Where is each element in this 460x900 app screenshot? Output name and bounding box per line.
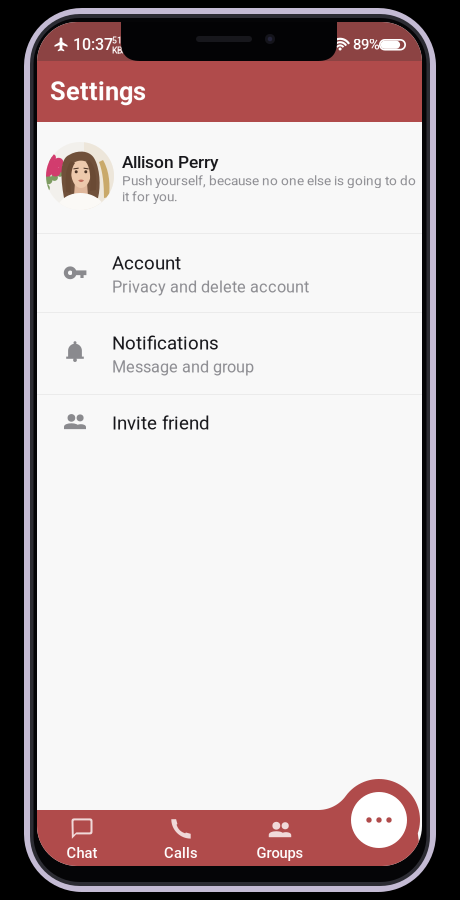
staticText: Account (112, 252, 181, 274)
button[interactable]: Chat (40, 818, 124, 862)
button[interactable]: Groups (238, 818, 322, 862)
button[interactable]: Allison Perry (37, 122, 422, 233)
button[interactable]: Account (37, 234, 422, 312)
button[interactable]: Calls (139, 818, 223, 862)
staticText: it for you. (122, 188, 178, 204)
staticText: Privacy and delete account (112, 277, 309, 297)
staticText: Calls (164, 844, 198, 862)
staticText: 10:37 (73, 35, 113, 54)
staticText: Notifications (112, 332, 219, 354)
staticText: Message and group (112, 357, 254, 377)
button[interactable]: Invite friend (37, 395, 422, 457)
staticText: Settings (50, 77, 146, 106)
staticText: Push yourself, because no one else is go… (122, 172, 416, 188)
staticText: KB/s (112, 45, 129, 56)
button[interactable]: More options (351, 792, 407, 848)
staticText: Allison Perry (122, 152, 218, 172)
staticText: Chat (66, 844, 97, 862)
button[interactable]: Notifications (37, 313, 422, 394)
staticText: 89% (353, 36, 380, 53)
staticText: Invite friend (112, 412, 210, 434)
staticText: 51.5 (112, 35, 129, 46)
staticText: Groups (256, 844, 303, 862)
